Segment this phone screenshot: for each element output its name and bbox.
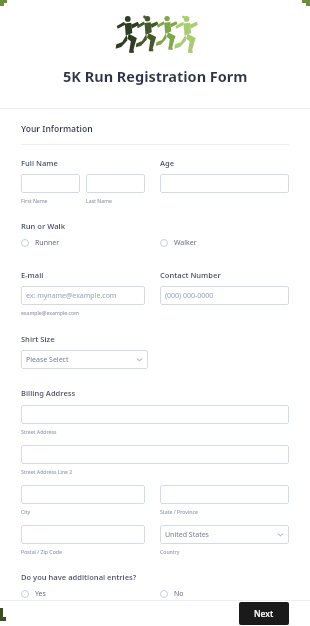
other: Open dropdown bbox=[277, 531, 284, 538]
button[interactable] bbox=[21, 405, 289, 424]
button[interactable] bbox=[21, 485, 145, 504]
staticText: Full Name bbox=[21, 158, 58, 168]
button[interactable]: Runner bbox=[21, 237, 60, 249]
button[interactable] bbox=[21, 525, 145, 544]
button[interactable] bbox=[21, 174, 80, 193]
staticText: Last Name bbox=[86, 197, 112, 204]
staticText: (000) 000-0000 bbox=[165, 291, 214, 301]
staticText: example@example.com bbox=[21, 309, 80, 316]
button[interactable]: ex: myname@example.com bbox=[21, 286, 145, 305]
staticText: Runner bbox=[35, 238, 60, 248]
staticText: ex: myname@example.com bbox=[26, 291, 117, 301]
staticText: Your Information bbox=[21, 123, 93, 135]
staticText: Do you have additional entries? bbox=[21, 572, 137, 582]
staticText: E-mail bbox=[21, 270, 44, 280]
button[interactable] bbox=[160, 485, 289, 504]
button[interactable]: (000) 000-0000 bbox=[160, 286, 289, 305]
staticText: Age bbox=[160, 158, 175, 168]
staticText: City bbox=[21, 508, 31, 515]
staticText: Street Address bbox=[21, 428, 57, 435]
button[interactable]: No bbox=[160, 588, 184, 600]
staticText: Shirt Size bbox=[21, 334, 55, 344]
button[interactable]: Please Select bbox=[21, 350, 148, 369]
staticText: United States bbox=[165, 530, 209, 540]
staticText: Walker bbox=[174, 238, 197, 248]
staticText: First Name bbox=[21, 197, 48, 204]
button[interactable] bbox=[160, 174, 289, 193]
staticText: Run or Walk bbox=[21, 221, 66, 231]
button[interactable] bbox=[86, 174, 145, 193]
button[interactable]: United States bbox=[160, 525, 289, 544]
staticText: Contact Number bbox=[160, 270, 221, 280]
staticText: Country bbox=[160, 548, 180, 555]
staticText: Postal / Zip Code bbox=[21, 548, 62, 555]
other: Open dropdown bbox=[136, 356, 143, 363]
staticText: Yes bbox=[35, 589, 46, 599]
staticText: Next bbox=[254, 608, 274, 620]
button[interactable]: Yes bbox=[21, 588, 46, 600]
staticText: 5K Run Registration Form bbox=[63, 66, 248, 86]
staticText: No bbox=[174, 589, 184, 599]
staticText: Please Select bbox=[26, 355, 69, 365]
button[interactable] bbox=[21, 445, 289, 464]
button[interactable]: Walker bbox=[160, 237, 197, 249]
button[interactable]: Next bbox=[239, 602, 289, 625]
staticText: Street Address Line 2 bbox=[21, 468, 73, 475]
staticText: Billing Address bbox=[21, 388, 76, 398]
staticText: State / Province bbox=[160, 508, 198, 515]
